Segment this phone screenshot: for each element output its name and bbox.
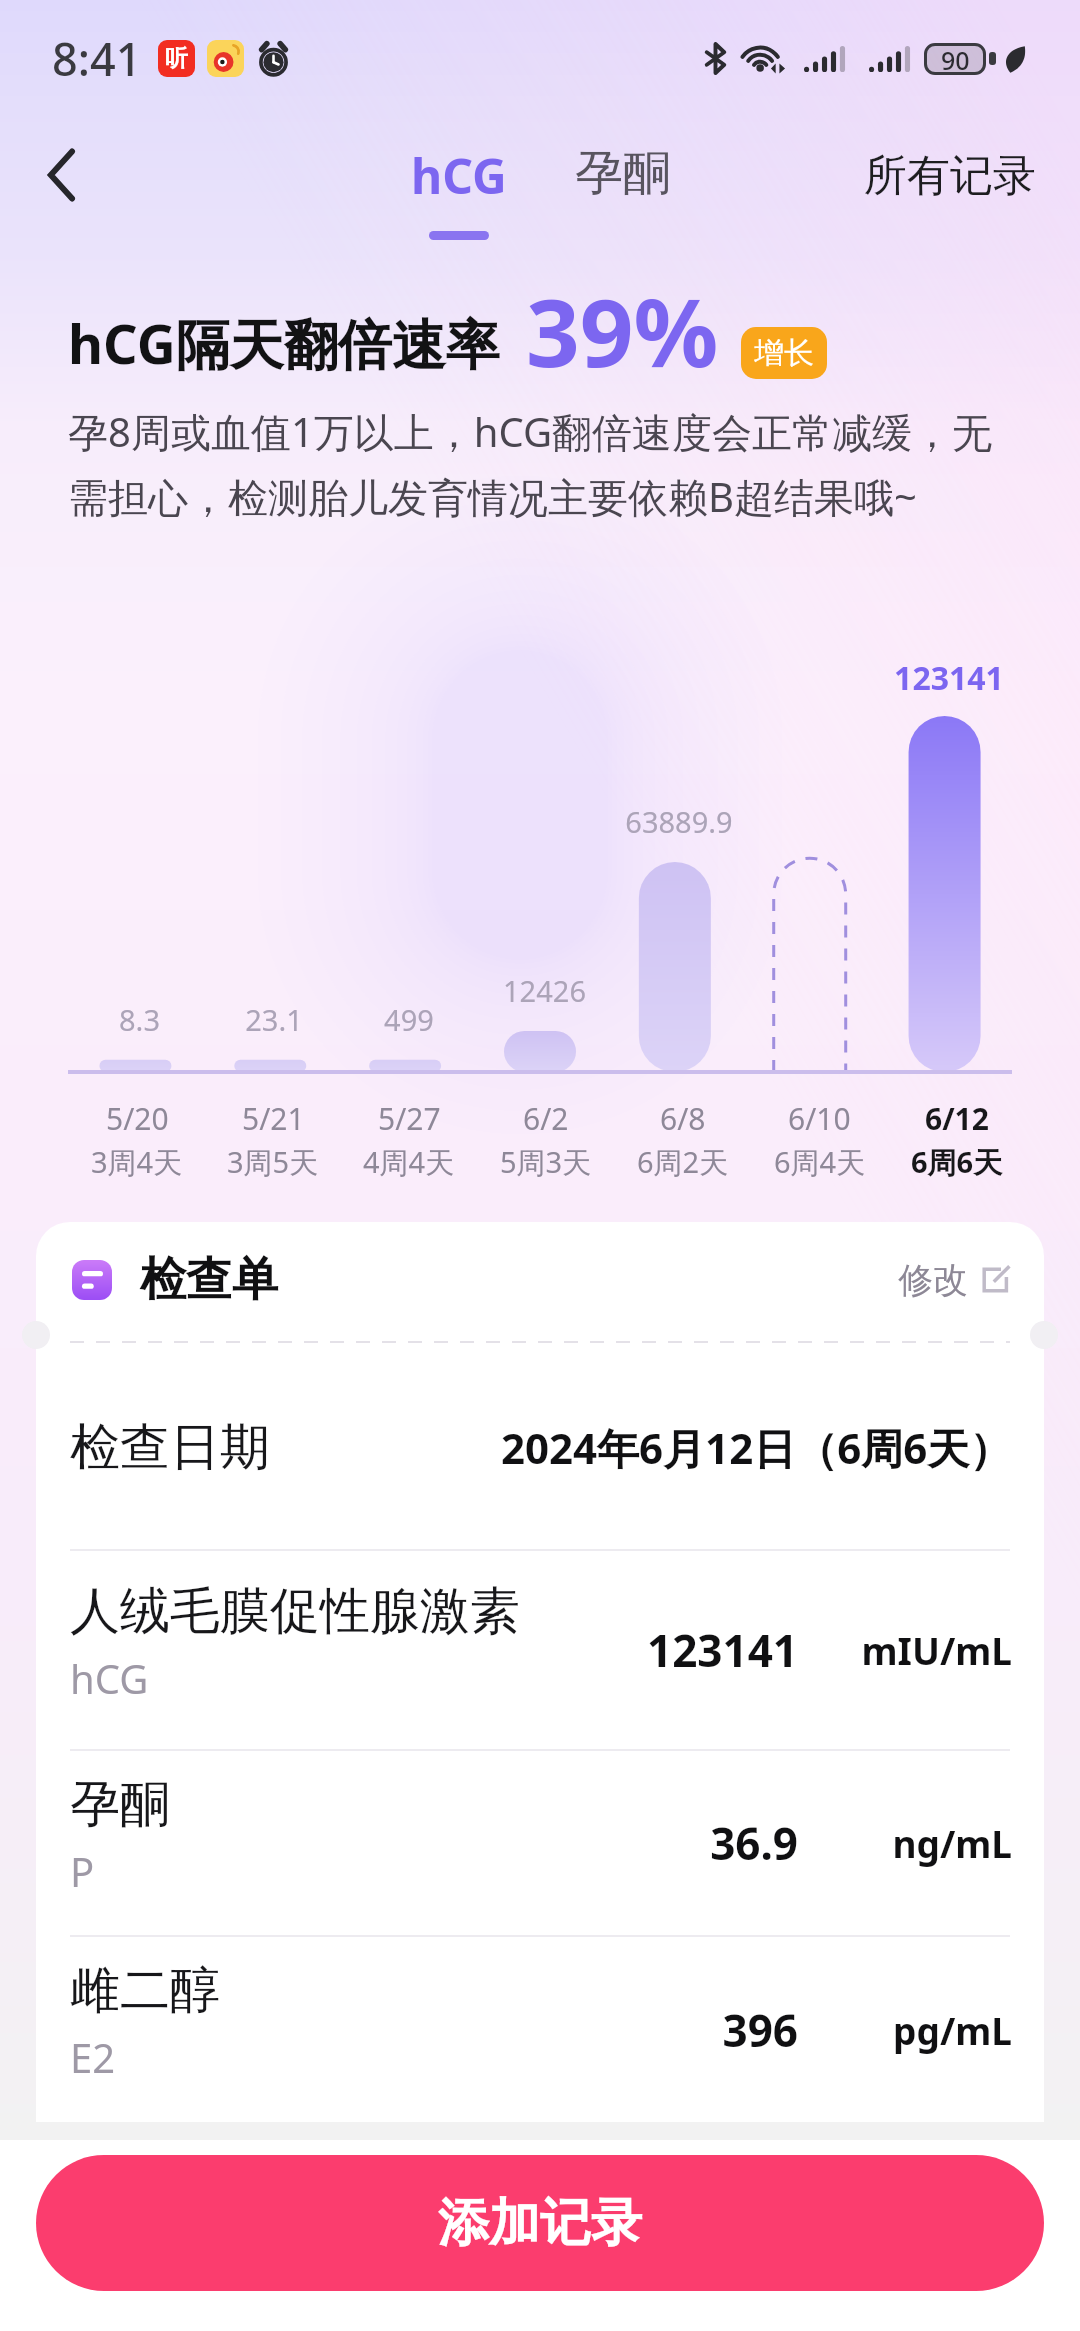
staticText: 8:41 (52, 28, 142, 89)
staticText: hCG隔天翻倍速率 (68, 306, 500, 380)
button[interactable]: 返回 (7, 120, 117, 230)
staticText: 4周4天 (363, 1142, 455, 1182)
staticText: 5/27 (378, 1098, 441, 1139)
staticText: ng/mL (798, 1818, 1012, 1868)
staticText: 所有记录 (864, 149, 1036, 203)
staticText: 39% (526, 267, 719, 395)
staticText: P (70, 1844, 95, 1898)
staticText: 90 (941, 43, 970, 75)
staticText: 396 (578, 2000, 798, 2060)
staticText: 6周6天 (911, 1142, 1003, 1182)
staticText: pg/mL (798, 2005, 1012, 2055)
staticText: 5/21 (242, 1098, 305, 1139)
staticText: 36.9 (578, 1813, 798, 1873)
button[interactable]: 所有记录 (858, 143, 1042, 209)
button[interactable]: 孕酮 (36, 1751, 1044, 1935)
staticText: mIU/mL (798, 1625, 1012, 1675)
staticText: E2 (70, 2030, 116, 2084)
staticText: 6周4天 (774, 1142, 866, 1182)
staticText: 孕酮 (70, 1773, 170, 1836)
staticText: 63889.9 (625, 802, 733, 841)
staticText: 修改 (898, 1258, 968, 1302)
button[interactable]: 人绒毛膜促性腺激素 (36, 1551, 1044, 1749)
staticText: 8.3 (119, 1000, 160, 1039)
staticText: 3周5天 (227, 1142, 319, 1182)
staticText: 499 (384, 1000, 434, 1039)
staticText: 人绒毛膜促性腺激素 (70, 1580, 520, 1643)
staticText: 6/12 (925, 1098, 989, 1139)
staticText: 孕8周或血值1万以上，hCG翻倍速度会正常减缓，无需担心，检测胎儿发育情况主要依… (68, 404, 1012, 524)
button[interactable]: 检查日期 (36, 1346, 1044, 1549)
staticText: 孕酮 (575, 143, 671, 203)
staticText: 6/8 (660, 1098, 706, 1139)
staticText: 雌二醇 (70, 1959, 220, 2022)
staticText: hCG (70, 1651, 149, 1705)
staticText: 5周3天 (500, 1142, 592, 1182)
staticText: 听 (165, 44, 188, 73)
staticText: 123141 (894, 656, 1004, 700)
staticText: 6周2天 (637, 1142, 729, 1182)
staticText: 12426 (503, 971, 586, 1010)
staticText: 检查单 (140, 1251, 278, 1309)
button[interactable]: hCG (395, 143, 523, 235)
staticText: 增长 (754, 334, 814, 372)
button[interactable]: 孕酮 (559, 143, 687, 203)
staticText: 123141 (578, 1620, 798, 1680)
button[interactable]: 添加记录 (36, 2155, 1044, 2291)
staticText: 添加记录 (438, 2191, 642, 2255)
button[interactable]: 修改 (890, 1250, 1018, 1310)
button[interactable]: 检查单 (36, 1222, 1044, 1338)
staticText: 3周4天 (91, 1142, 183, 1182)
staticText: 23.1 (245, 1000, 303, 1039)
staticText: 2024年6月12日（6周6天） (501, 1419, 1012, 1476)
staticText: hCG (411, 143, 507, 208)
staticText: 6/2 (523, 1098, 569, 1139)
staticText: 检查日期 (70, 1416, 270, 1479)
button[interactable]: 雌二醇 (36, 1937, 1044, 2122)
staticText: 6/10 (788, 1098, 851, 1139)
staticText: 5/20 (106, 1098, 169, 1139)
